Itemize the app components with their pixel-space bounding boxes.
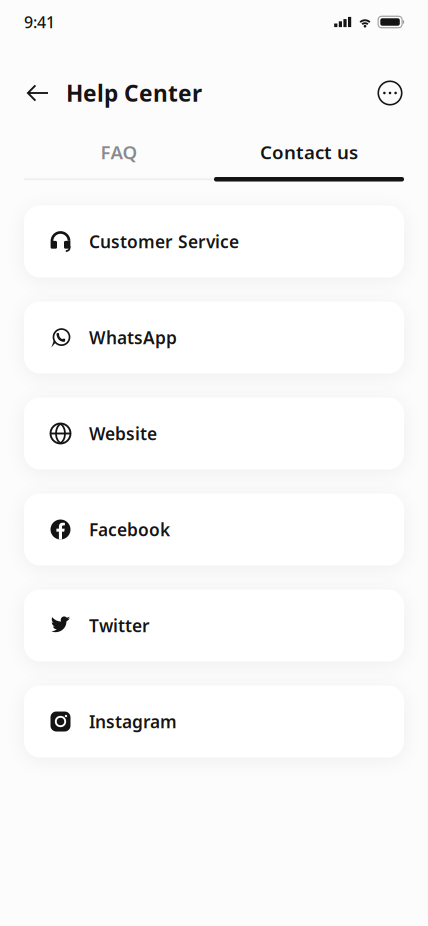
staticText: Twitter: [89, 614, 150, 637]
staticText: Customer Service: [89, 230, 239, 253]
button[interactable]: FAQ: [24, 133, 214, 177]
button[interactable]: WhatsApp: [24, 301, 404, 373]
staticText: WhatsApp: [89, 326, 177, 349]
button[interactable]: Facebook: [24, 493, 404, 565]
staticText: Instagram: [89, 710, 177, 733]
button[interactable]: Back: [21, 74, 55, 112]
button[interactable]: Website: [24, 397, 404, 469]
button[interactable]: Customer Service: [24, 205, 404, 277]
staticText: FAQ: [100, 140, 137, 164]
button[interactable]: Instagram: [24, 685, 404, 757]
button[interactable]: Contact us: [214, 133, 404, 177]
staticText: Contact us: [260, 140, 358, 164]
staticText: Facebook: [89, 518, 170, 541]
staticText: Help Center: [66, 78, 202, 108]
button[interactable]: More options: [373, 74, 407, 112]
staticText: 9:41: [24, 11, 55, 33]
staticText: Website: [89, 422, 157, 445]
button[interactable]: Twitter: [24, 589, 404, 661]
